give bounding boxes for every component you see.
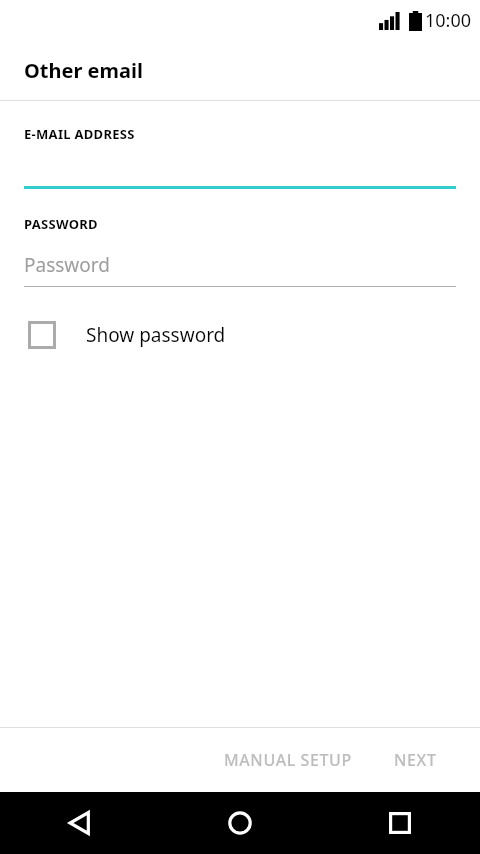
button[interactable]: Password xyxy=(0,233,480,287)
staticText: NEXT xyxy=(394,749,437,771)
staticText: Show password xyxy=(86,322,226,348)
button[interactable]: Show password xyxy=(0,313,480,357)
button[interactable]: MANUAL SETUP xyxy=(210,739,366,781)
staticText: E-MAIL ADDRESS xyxy=(24,125,135,143)
staticText: Other email xyxy=(24,57,143,84)
staticText: MANUAL SETUP xyxy=(224,749,352,771)
staticText: Password xyxy=(24,252,110,278)
staticText: 10:00 xyxy=(425,8,472,33)
button[interactable]: Recent apps xyxy=(320,792,480,854)
button[interactable]: Home xyxy=(160,792,320,854)
button[interactable]: NEXT xyxy=(380,739,451,781)
staticText: PASSWORD xyxy=(24,215,98,233)
button[interactable] xyxy=(0,143,480,189)
button[interactable]: Back xyxy=(0,792,160,854)
